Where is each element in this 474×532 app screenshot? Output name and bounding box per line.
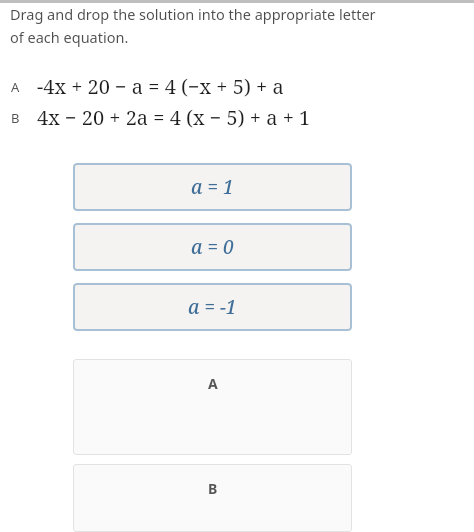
staticText: a = −1 [188,294,237,320]
button[interactable]: A [73,359,352,455]
staticText: B [11,109,37,127]
staticText: a = 1 [191,174,234,200]
staticText: A [11,78,37,96]
button[interactable]: B [73,464,352,532]
staticText: A [208,374,218,393]
staticText: Drag and drop the solution into the appr… [10,4,376,24]
staticText: a = 0 [191,234,234,260]
button[interactable]: a = 1 [73,163,352,211]
button[interactable]: a = −1 [73,283,352,331]
staticText: -4x + 20 − a = 4 (−x + 5) + a [37,73,284,100]
button[interactable]: a = 0 [73,223,352,271]
staticText: B [208,479,218,498]
staticText: 4x − 20 + 2a = 4 (x − 5) + a + 1 [37,104,311,131]
staticText: of each equation. [10,27,129,47]
